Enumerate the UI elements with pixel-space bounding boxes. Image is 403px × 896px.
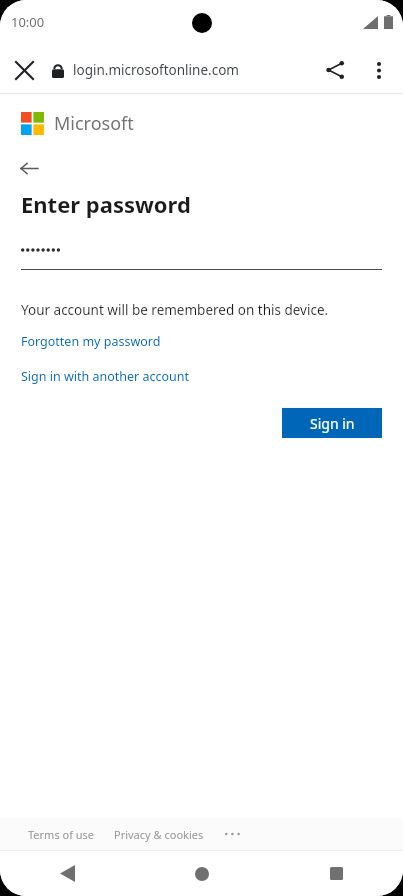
staticText: Sign in with another account bbox=[21, 368, 190, 385]
button[interactable]: Recent apps bbox=[269, 851, 403, 896]
staticText: Privacy & cookies bbox=[114, 827, 204, 842]
button[interactable]: Back bbox=[21, 155, 55, 181]
staticText: Microsoft bbox=[54, 111, 134, 136]
button[interactable]: login.microsoftonline.com bbox=[52, 61, 239, 79]
button[interactable]: Sign in bbox=[282, 408, 382, 438]
button[interactable] bbox=[21, 239, 382, 270]
staticText: Forgotten my password bbox=[21, 333, 161, 350]
button[interactable]: Back bbox=[0, 851, 135, 896]
button[interactable]: Sign in with another account bbox=[21, 368, 190, 385]
staticText: Enter password bbox=[21, 189, 191, 219]
button[interactable]: Close bbox=[4, 50, 44, 90]
button[interactable]: Share bbox=[314, 49, 356, 91]
staticText: Your account will be remembered on this … bbox=[21, 301, 329, 319]
staticText: Terms of use bbox=[28, 827, 95, 842]
button[interactable]: Home bbox=[135, 851, 269, 896]
staticText: login.microsoftonline.com bbox=[73, 61, 239, 79]
staticText: Sign in bbox=[310, 414, 355, 433]
button[interactable]: More options bbox=[358, 49, 400, 91]
staticText: 10:00 bbox=[11, 13, 45, 31]
button[interactable]: Privacy & cookies bbox=[114, 827, 204, 842]
button[interactable]: More bbox=[221, 824, 245, 844]
button[interactable]: Terms of use bbox=[28, 827, 95, 842]
button[interactable]: Forgotten my password bbox=[21, 333, 161, 350]
